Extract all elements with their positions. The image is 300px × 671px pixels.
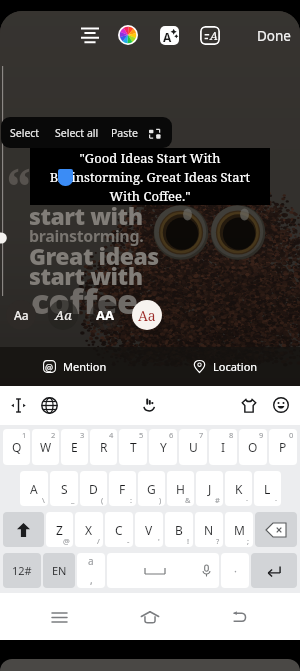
button[interactable]: C: [105, 512, 133, 547]
staticText: @: [45, 361, 54, 373]
button[interactable]: EN: [43, 553, 75, 588]
button[interactable]: N: [195, 512, 223, 547]
button[interactable]: L: [254, 471, 281, 506]
button[interactable]: Space: [107, 553, 219, 588]
staticText: L: [264, 481, 271, 497]
staticText: Great ideas: [29, 240, 159, 271]
button[interactable]: "Good Ideas Start With Brainstorming. Gr…: [30, 148, 270, 205]
staticText: U: [189, 439, 198, 455]
staticText: "Good Ideas Start With Brainstorming. Gr…: [34, 149, 266, 205]
button[interactable]: Aa: [48, 300, 78, 330]
button[interactable]: Select all: [49, 119, 105, 147]
staticText: E: [71, 439, 78, 455]
staticText: X: [85, 522, 93, 538]
button[interactable]: Colour picker: [114, 21, 142, 49]
staticText: 12#: [12, 563, 32, 578]
staticText: ?: [216, 536, 220, 546]
staticText: K: [235, 481, 243, 497]
staticText: 8: [229, 430, 234, 440]
button[interactable]: Period: [221, 553, 249, 588]
button[interactable]: Shift: [3, 512, 44, 547]
button[interactable]: H: [167, 471, 194, 506]
button[interactable]: Q: [3, 429, 30, 465]
button[interactable]: @: [0, 347, 150, 386]
staticText: T: [130, 439, 137, 455]
staticText: coffee: [31, 278, 138, 324]
staticText: Y: [160, 439, 167, 455]
button[interactable]: P: [269, 429, 297, 465]
button[interactable]: S: [50, 471, 78, 506]
staticText: start with: [29, 260, 143, 291]
button[interactable]: Location: [150, 347, 300, 386]
staticText: M: [234, 522, 245, 538]
staticText: ·: [275, 495, 278, 505]
button[interactable]: R: [90, 429, 117, 465]
button[interactable]: AA: [90, 300, 120, 330]
staticText: V: [145, 522, 153, 538]
staticText: “: [6, 152, 32, 220]
staticText: Paste: [111, 126, 138, 140]
button[interactable]: Aa: [132, 300, 162, 330]
staticText: Aa: [55, 306, 72, 324]
staticText: G: [147, 481, 156, 497]
staticText: P: [279, 439, 287, 455]
staticText: \: [42, 495, 45, 505]
button[interactable]: Paste: [105, 119, 144, 147]
button[interactable]: Enter: [251, 553, 297, 588]
staticText: 3: [80, 430, 85, 440]
button[interactable]: Comma: [77, 553, 105, 588]
button[interactable]: U: [179, 429, 207, 465]
button[interactable]: Home: [136, 603, 164, 631]
button[interactable]: Text cursor: [4, 391, 32, 419]
button[interactable]: M: [225, 512, 253, 547]
button[interactable]: T: [119, 429, 147, 465]
staticText: ): [159, 495, 162, 505]
staticText: :: [130, 495, 133, 505]
button[interactable]: Text style: [156, 22, 183, 49]
button[interactable]: B: [165, 512, 193, 547]
button[interactable]: X: [75, 512, 103, 547]
button[interactable]: Text alignment: [76, 21, 104, 49]
button[interactable]: Y: [149, 429, 177, 465]
button[interactable]: E: [61, 429, 88, 465]
staticText: Done: [257, 27, 291, 45]
staticText: F: [119, 481, 126, 497]
staticText: Aa: [14, 307, 29, 323]
button[interactable]: Handwriting input: [135, 391, 163, 419]
button[interactable]: Aa: [6, 300, 36, 330]
button[interactable]: G: [138, 471, 165, 506]
button[interactable]: Backspace: [255, 512, 297, 547]
staticText: Z: [56, 522, 63, 538]
staticText: AA: [96, 306, 114, 324]
button[interactable]: A: [20, 471, 48, 506]
button[interactable]: J: [196, 471, 223, 506]
staticText: I: [221, 439, 226, 455]
staticText: 9: [259, 430, 264, 440]
button[interactable]: K: [225, 471, 252, 506]
button[interactable]: W: [32, 429, 59, 465]
button[interactable]: More options: [144, 126, 172, 140]
staticText: ·: [234, 563, 237, 578]
button[interactable]: Change language: [35, 391, 63, 419]
button[interactable]: Back: [226, 603, 254, 631]
button[interactable]: F: [109, 471, 136, 506]
button[interactable]: O: [239, 429, 267, 465]
button[interactable]: D: [80, 471, 107, 506]
button[interactable]: 12#: [3, 553, 41, 588]
button[interactable]: V: [135, 512, 163, 547]
staticText: A: [30, 481, 38, 497]
staticText: Location: [213, 359, 258, 374]
button[interactable]: Keyboard theme: [235, 391, 263, 419]
staticText: H: [176, 481, 185, 497]
staticText: C: [115, 522, 123, 538]
button[interactable]: I: [209, 429, 237, 465]
button[interactable]: Emoji: [267, 391, 295, 419]
button[interactable]: Text background: [196, 22, 223, 49]
staticText: D: [89, 481, 98, 497]
staticText: Aa: [138, 306, 156, 325]
button[interactable]: Recent apps: [45, 603, 73, 631]
button[interactable]: Select: [1, 119, 49, 147]
button[interactable]: Done: [252, 21, 296, 51]
button[interactable]: Z: [46, 512, 73, 547]
staticText: ;: [247, 536, 250, 546]
